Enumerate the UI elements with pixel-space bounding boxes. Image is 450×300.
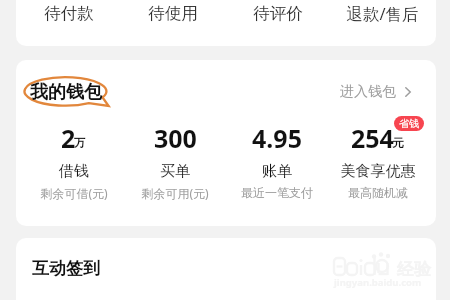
button[interactable]: 2 xyxy=(22,120,126,206)
staticText: 退款/售后 xyxy=(346,2,419,25)
staticText: 剩余可用(元) xyxy=(123,185,227,201)
staticText: 万 xyxy=(74,136,86,150)
button[interactable]: 退款/售后 xyxy=(330,0,434,27)
staticText: 省钱 xyxy=(399,117,419,130)
staticText: 最高随机减 xyxy=(326,185,430,200)
button[interactable]: 进入钱包 xyxy=(335,79,417,105)
staticText: 账单 xyxy=(225,162,329,181)
staticText: 借钱 xyxy=(22,162,126,181)
staticText: 剩余可借(元) xyxy=(22,185,126,201)
button[interactable]: 300 xyxy=(123,120,227,206)
staticText: 我的钱包 xyxy=(30,81,102,104)
staticText: 最近一笔支付 xyxy=(225,185,329,200)
staticText: 254 xyxy=(351,121,394,155)
staticText: 300 xyxy=(154,121,197,155)
button[interactable]: 我的钱包 xyxy=(25,76,109,104)
staticText: 经验 xyxy=(397,259,431,280)
button[interactable]: 待评价 xyxy=(226,0,330,27)
staticText: 待付款 xyxy=(44,3,94,24)
button[interactable]: 待付款 xyxy=(17,0,121,27)
staticText: 互动签到 xyxy=(32,258,100,279)
staticText: 2 xyxy=(61,121,76,155)
staticText: 美食享优惠 xyxy=(326,162,430,181)
staticText: 待使用 xyxy=(148,3,198,24)
button[interactable]: 待使用 xyxy=(121,0,225,27)
button[interactable]: 254 xyxy=(326,120,430,206)
staticText: jingyan.baidu.com xyxy=(334,276,422,289)
staticText: 待评价 xyxy=(253,3,303,24)
staticText: 4.95 xyxy=(252,121,302,155)
staticText: 元 xyxy=(392,136,404,150)
staticText: 买单 xyxy=(123,162,227,181)
button[interactable]: 互动签到 xyxy=(27,253,107,281)
staticText: 进入钱包 xyxy=(340,83,396,101)
button[interactable]: 4.95 xyxy=(225,120,329,206)
